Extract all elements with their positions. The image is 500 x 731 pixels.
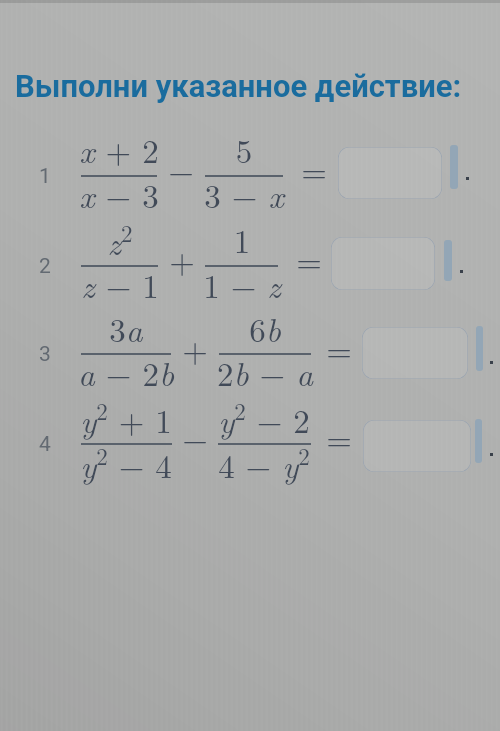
button[interactable]: Answer input field [363, 420, 471, 472]
staticText: y2 − 2 [144, 394, 384, 442]
button[interactable]: Text cursor [450, 145, 458, 189]
button[interactable]: Text cursor [444, 240, 452, 281]
staticText: − [75, 414, 315, 461]
staticText: x + 2 [0, 126, 239, 173]
staticText: 1 [39, 164, 51, 189]
staticText: 2b − a [145, 349, 385, 396]
staticText: 3 [39, 342, 51, 367]
staticText: z − 1 [0, 261, 240, 308]
button[interactable]: Answer input field [362, 327, 468, 379]
staticText: 4 [39, 432, 51, 457]
staticText: = [189, 236, 429, 283]
staticText: 5 [124, 126, 364, 173]
staticText: + [75, 325, 315, 372]
staticText: = [219, 325, 459, 372]
staticText: 1 [122, 216, 362, 263]
button[interactable]: Answer input field [338, 147, 442, 199]
staticText: = [194, 146, 434, 193]
staticText: + [62, 236, 302, 283]
staticText: 2 [39, 254, 51, 279]
staticText: a − 2b [6, 349, 246, 396]
button[interactable]: Выполни указанное действие: [15, 68, 462, 104]
staticText: y2 + 1 [6, 394, 246, 442]
staticText: 4 − y2 [144, 439, 384, 487]
staticText: 3a [6, 305, 246, 352]
staticText: z2 [0, 216, 240, 264]
staticText: x − 3 [0, 171, 239, 218]
staticText: − [61, 146, 301, 193]
button[interactable]: Text cursor [476, 326, 483, 371]
staticText: y2 − 4 [6, 439, 246, 487]
staticText: 1 − z [122, 261, 362, 308]
button[interactable]: Text cursor [475, 419, 482, 463]
staticText: 3 − x [124, 171, 364, 218]
staticText: Выполни указанное действие: [15, 68, 462, 104]
button[interactable]: Answer input field [331, 237, 435, 290]
staticText: = [219, 414, 459, 461]
staticText: 6b [145, 305, 385, 352]
